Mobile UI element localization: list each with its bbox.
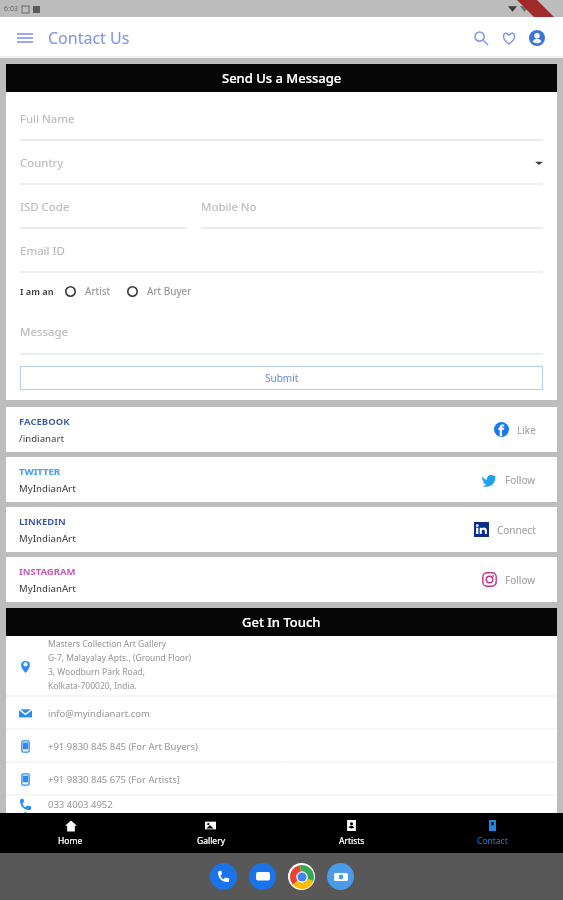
button[interactable]: Mobile No — [201, 185, 543, 229]
button[interactable]: +91 9830 845 675 (For Artists] — [6, 763, 557, 795]
button[interactable]: Phone — [210, 863, 237, 890]
staticText: Get In Touch — [242, 613, 321, 631]
staticText: Masters Collection Art Gallery — [48, 638, 167, 650]
staticText: Like — [517, 423, 536, 437]
button[interactable]: Masters Collection Art Gallery — [6, 636, 557, 696]
button[interactable]: Camera — [327, 863, 354, 890]
staticText: LINKEDIN — [19, 515, 66, 528]
staticText: I am an — [20, 285, 54, 297]
button[interactable]: Artist — [65, 284, 111, 298]
staticText: Message — [20, 324, 68, 340]
button[interactable]: Contact — [422, 813, 563, 853]
staticText: Contact Us — [48, 27, 130, 49]
staticText: 033 4003 4952 — [48, 798, 113, 811]
staticText: Full Name — [20, 111, 75, 127]
staticText: Gallery — [197, 835, 225, 847]
staticText: INSTAGRAM — [19, 565, 76, 578]
button[interactable]: Home — [0, 813, 140, 853]
button[interactable]: +91 9830 845 845 (For Art Buyers) — [6, 730, 557, 762]
button[interactable]: Artists — [281, 813, 422, 853]
staticText: MyIndianArt — [19, 532, 76, 545]
button[interactable]: info@myindianart.com — [6, 697, 557, 729]
button[interactable]: Menu — [12, 25, 38, 51]
button[interactable]: Gallery — [140, 813, 281, 853]
button[interactable]: FACEBOOK — [6, 407, 557, 452]
staticText: FACEBOOK — [19, 415, 70, 428]
button[interactable]: Search — [467, 24, 495, 52]
staticText: Follow — [505, 573, 536, 587]
staticText: 3, Woodburn Park Road, — [48, 666, 145, 678]
button[interactable]: Favorites — [495, 24, 523, 52]
button[interactable]: Submit — [20, 366, 543, 390]
staticText: Art Buyer — [147, 284, 192, 298]
staticText: MyIndianArt — [19, 582, 76, 595]
button[interactable]: TWITTER — [6, 457, 557, 502]
staticText: 6:03 — [4, 4, 18, 14]
staticText: Email ID — [20, 243, 65, 259]
button[interactable]: Account — [523, 24, 551, 52]
staticText: Artist — [85, 284, 111, 298]
staticText: Follow — [505, 473, 536, 487]
staticText: Kolkata-700020, India. — [48, 680, 137, 692]
staticText: TWITTER — [19, 465, 61, 478]
button[interactable]: 033 4003 4952 — [6, 796, 557, 813]
staticText: Mobile No — [201, 199, 257, 215]
button[interactable]: Message — [20, 309, 543, 355]
staticText: ISD Code — [20, 199, 70, 215]
button[interactable]: Chrome — [288, 863, 315, 890]
staticText: Send Us a Message — [222, 69, 342, 87]
staticText: Artists — [339, 835, 365, 847]
staticText: Submit — [265, 371, 299, 385]
staticText: +91 9830 845 845 (For Art Buyers) — [48, 740, 198, 753]
staticText: +91 9830 845 675 (For Artists] — [48, 773, 180, 786]
button[interactable]: Messages — [249, 863, 276, 890]
button[interactable]: Art Buyer — [127, 284, 192, 298]
staticText: G-7, Malayalay Apts., (Ground Floor) — [48, 652, 192, 664]
staticText: /indianart — [19, 432, 65, 445]
staticText: Contact — [477, 835, 508, 847]
button[interactable]: ISD Code — [20, 185, 187, 229]
button[interactable]: LINKEDIN — [6, 507, 557, 552]
staticText: info@myindianart.com — [48, 707, 150, 720]
button[interactable]: Full Name — [20, 97, 543, 141]
button[interactable]: INSTAGRAM — [6, 557, 557, 602]
button[interactable]: Country — [20, 141, 543, 185]
staticText: Country — [20, 155, 64, 171]
button[interactable]: Email ID — [20, 229, 543, 273]
staticText: Home — [58, 835, 83, 847]
staticText: MyIndianArt — [19, 482, 76, 495]
staticText: Connect — [497, 523, 536, 537]
